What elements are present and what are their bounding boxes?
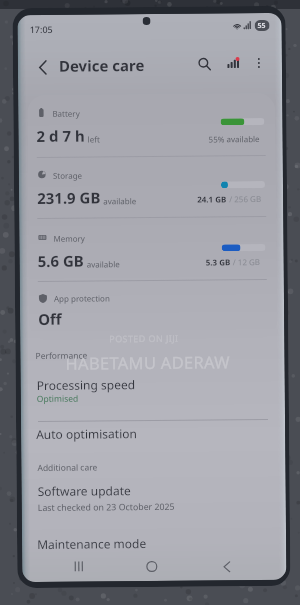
staticText: Last checked on 23 October 2025 — [38, 501, 175, 514]
staticText: 55% available — [208, 133, 261, 144]
button[interactable] — [22, 420, 285, 460]
button[interactable] — [28, 217, 277, 280]
staticText: Optimised — [37, 393, 79, 405]
staticText: Battery — [52, 108, 80, 119]
staticText: Performance — [35, 349, 87, 362]
button[interactable] — [23, 528, 286, 562]
staticText: Auto optimisation — [36, 425, 137, 442]
staticText: 2 d 7 h — [36, 126, 86, 146]
staticText: Device care — [59, 55, 145, 76]
staticText: 231.9 GB — [37, 187, 101, 208]
staticText: available — [103, 195, 137, 206]
staticText: / 12 GB — [231, 256, 261, 267]
staticText: 24.1 GB — [197, 193, 227, 205]
staticText: Maintenance mode — [37, 535, 147, 552]
staticText: Additional care — [37, 461, 97, 474]
staticText: 5.3 GB — [206, 256, 231, 267]
staticText: 17:05 — [30, 23, 54, 35]
staticText: available — [87, 258, 121, 270]
staticText: Software update — [38, 482, 132, 499]
button[interactable]: Usage statistics — [222, 52, 244, 74]
staticText: Memory — [53, 233, 85, 244]
staticText: HABETAMU ADERAW — [65, 350, 231, 374]
button[interactable] — [29, 280, 277, 340]
staticText: Processing speed — [37, 376, 136, 393]
button[interactable]: Search — [193, 52, 215, 75]
staticText: / 256 GB — [227, 193, 261, 204]
button[interactable]: Back — [213, 553, 239, 579]
staticText: 5.6 GB — [37, 251, 85, 271]
button[interactable] — [27, 95, 276, 157]
staticText: App protection — [54, 292, 110, 304]
staticText: Storage — [53, 170, 83, 181]
staticText: POSTED ON JIJI — [109, 332, 179, 344]
button[interactable] — [28, 156, 276, 217]
staticText: 55 — [257, 21, 267, 31]
button[interactable] — [22, 366, 285, 416]
button[interactable]: Recent apps — [65, 552, 91, 579]
button[interactable]: More options — [248, 52, 270, 74]
button[interactable]: Navigate up — [31, 56, 53, 78]
button[interactable] — [22, 478, 286, 528]
staticText: Off — [38, 309, 62, 329]
staticText: left — [87, 133, 101, 144]
button[interactable]: Home — [138, 553, 164, 579]
